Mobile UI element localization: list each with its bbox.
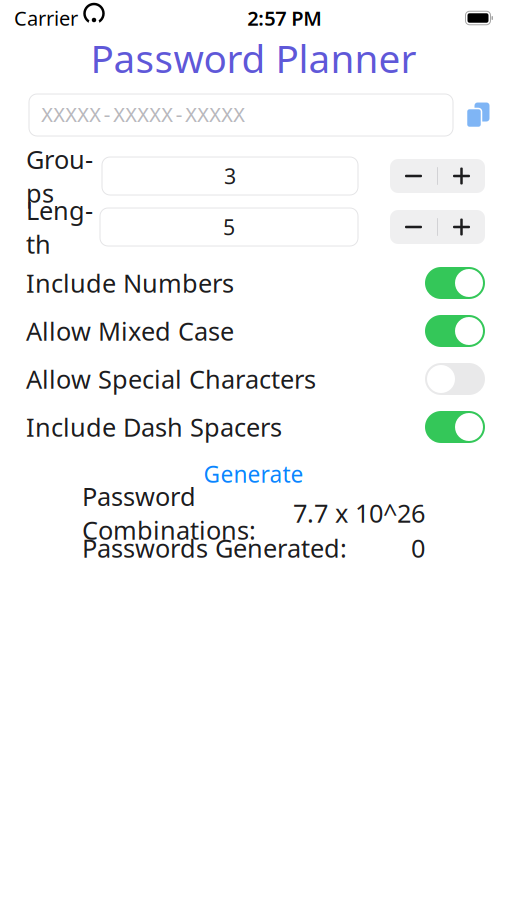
staticText: 5 <box>223 213 235 241</box>
button[interactable]: Generate <box>0 457 507 491</box>
button[interactable]: Include Dash Spacers <box>0 403 507 451</box>
staticText: 3 <box>224 162 236 190</box>
staticText: Allow Mixed Case <box>26 314 234 348</box>
staticText: Password Combinations: <box>82 479 256 547</box>
staticText: 2:57 PM <box>247 5 322 31</box>
staticText: Generate <box>203 459 303 489</box>
staticText: XXXXX-XXXXX-XXXXX <box>41 104 245 126</box>
staticText: Password Planner <box>90 32 416 84</box>
staticText: Passwords Generated: <box>82 531 347 565</box>
button[interactable]: Decrease <box>390 210 437 244</box>
button[interactable]: Allow Special Characters <box>0 355 507 403</box>
staticText: Groups <box>26 142 93 210</box>
staticText: Carrier <box>14 5 78 31</box>
button[interactable]: Increase <box>438 210 485 244</box>
staticText: Include Dash Spacers <box>26 410 282 444</box>
staticText: Length <box>26 193 93 261</box>
button[interactable]: Allow Mixed Case <box>0 307 507 355</box>
button[interactable]: Include Numbers <box>0 259 507 307</box>
button[interactable]: Increase <box>438 159 485 193</box>
button[interactable]: Decrease <box>390 159 437 193</box>
button[interactable]: Copy password <box>463 94 493 136</box>
staticText: Allow Special Characters <box>26 362 316 396</box>
staticText: Include Numbers <box>26 266 234 300</box>
staticText: 0 <box>411 531 425 565</box>
staticText: 7.7 x 10^26 <box>293 496 425 530</box>
